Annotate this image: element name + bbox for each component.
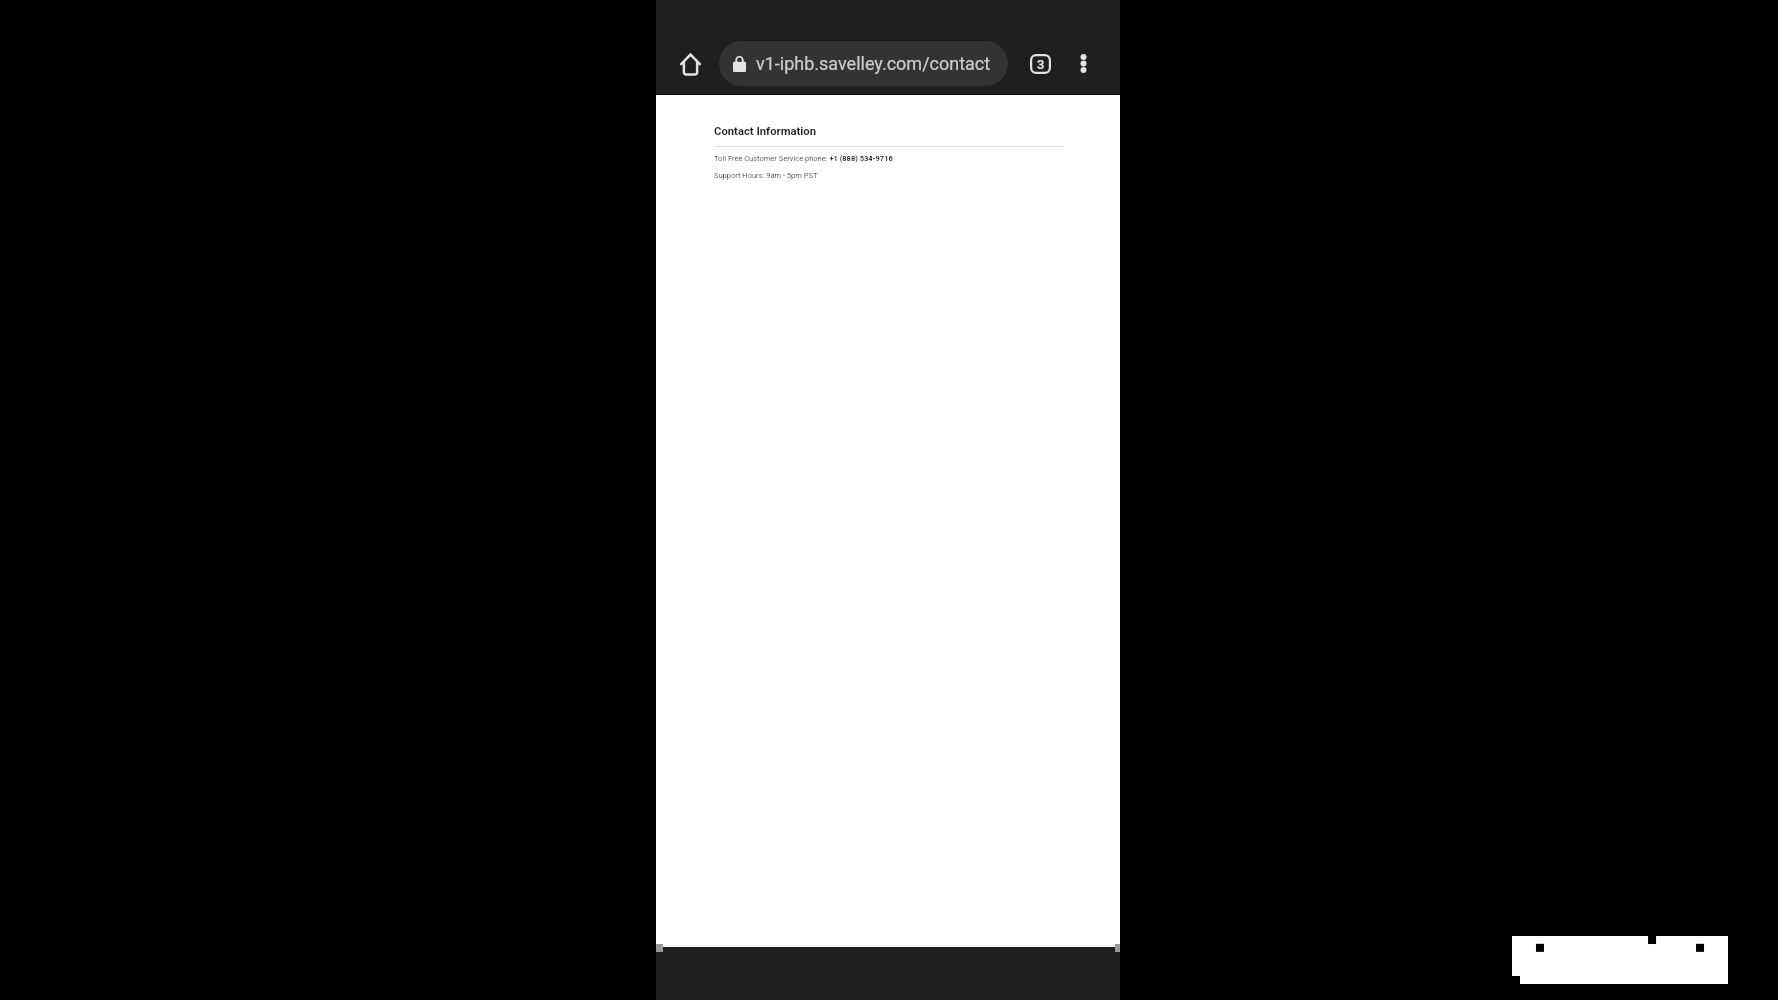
staticText: Contact Information: [714, 125, 817, 138]
staticText: 3: [1037, 57, 1045, 72]
staticText: Toll Free Customer Service phone: +1 (88…: [714, 154, 893, 163]
button[interactable]: v1-iphb.savelley.com/contact: [719, 41, 1008, 86]
staticText: v1-iphb.savelley.com/contact: [756, 53, 991, 74]
button[interactable]: Open tabs: 3: [1018, 42, 1062, 86]
staticText: Support Hours: 9am - 5pm PST: [714, 171, 818, 180]
button[interactable]: Home: [668, 42, 712, 86]
button[interactable]: More options: [1061, 41, 1105, 85]
